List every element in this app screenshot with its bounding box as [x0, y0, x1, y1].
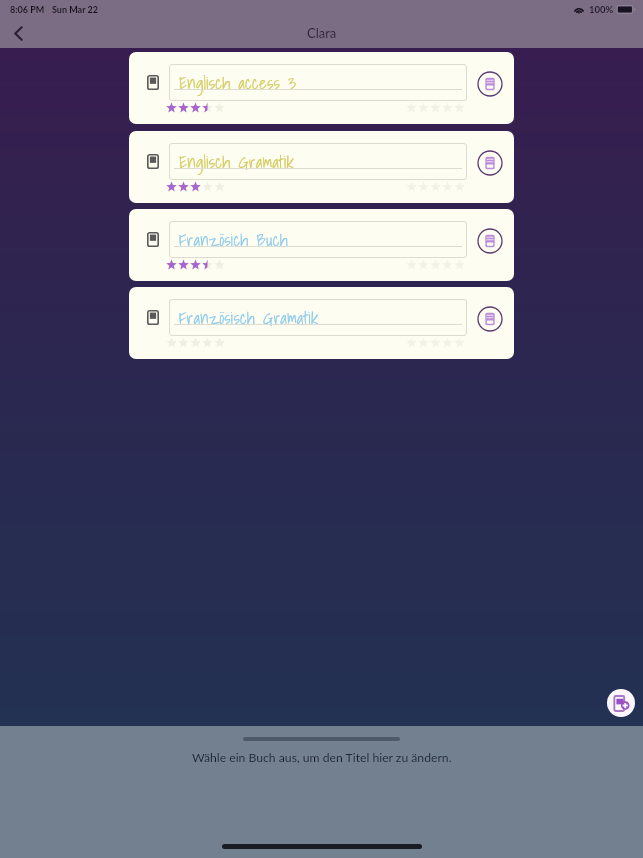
staticText: Englisch access 3 — [179, 69, 297, 96]
button[interactable]: Open book — [476, 149, 504, 177]
button[interactable]: Open book — [476, 305, 504, 333]
staticText: 8:06 PM — [10, 4, 45, 15]
staticText: Englisch Gramatik — [179, 148, 295, 175]
button[interactable]: Englisch access 3 — [129, 52, 514, 124]
staticText: Wähle ein Buch aus, um den Titel hier zu… — [192, 750, 452, 765]
staticText: Französisch Gramatik — [179, 304, 319, 331]
button[interactable]: Add book — [607, 689, 635, 717]
button[interactable]: Back — [0, 18, 36, 48]
staticText: Französich Buch — [179, 226, 289, 253]
button[interactable]: Französisch Gramatik — [129, 287, 514, 359]
button[interactable]: Open book — [476, 70, 504, 98]
staticText: 100% — [589, 4, 614, 15]
staticText: Clara — [307, 25, 337, 41]
staticText: Sun Mar 22 — [52, 4, 98, 15]
button[interactable]: Englisch Gramatik — [129, 131, 514, 203]
button[interactable]: Open book — [476, 227, 504, 255]
button[interactable]: Französich Buch — [129, 209, 514, 281]
